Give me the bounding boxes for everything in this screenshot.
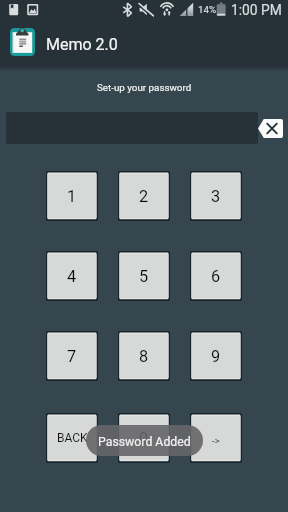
staticText: BACK xyxy=(57,431,88,445)
staticText: 5 xyxy=(139,267,149,286)
staticText: Password Added xyxy=(98,435,191,449)
button[interactable]: 1 xyxy=(46,171,98,221)
button[interactable]: 0 xyxy=(118,413,170,463)
button[interactable]: 3 xyxy=(190,171,242,221)
staticText: 0 xyxy=(139,429,149,448)
button[interactable]: 4 xyxy=(46,251,98,301)
staticText: 1:00 PM xyxy=(231,2,282,18)
button[interactable]: 6 xyxy=(190,251,242,301)
staticText: 9 xyxy=(211,347,221,366)
staticText: Memo 2.0 xyxy=(46,35,118,54)
other: Memo xyxy=(10,28,35,56)
staticText: -> xyxy=(212,435,220,446)
button[interactable]: 8 xyxy=(118,331,170,381)
button[interactable]: BACK xyxy=(46,413,98,463)
button[interactable]: 5 xyxy=(118,251,170,301)
staticText: Set-up your password xyxy=(97,82,192,93)
staticText: 8 xyxy=(139,347,149,366)
button[interactable]: 2 xyxy=(118,171,170,221)
staticText: 4 xyxy=(67,267,77,286)
button[interactable]: 9 xyxy=(190,331,242,381)
staticText: 3 xyxy=(211,187,221,206)
staticText: 14% xyxy=(198,4,217,15)
staticText: 6 xyxy=(211,267,221,286)
staticText: 7 xyxy=(67,347,77,366)
button[interactable]: -> xyxy=(190,413,242,463)
button[interactable]: 7 xyxy=(46,331,98,381)
staticText: 2 xyxy=(139,187,149,206)
staticText: 1 xyxy=(67,187,77,206)
button[interactable]: Delete xyxy=(258,119,283,138)
